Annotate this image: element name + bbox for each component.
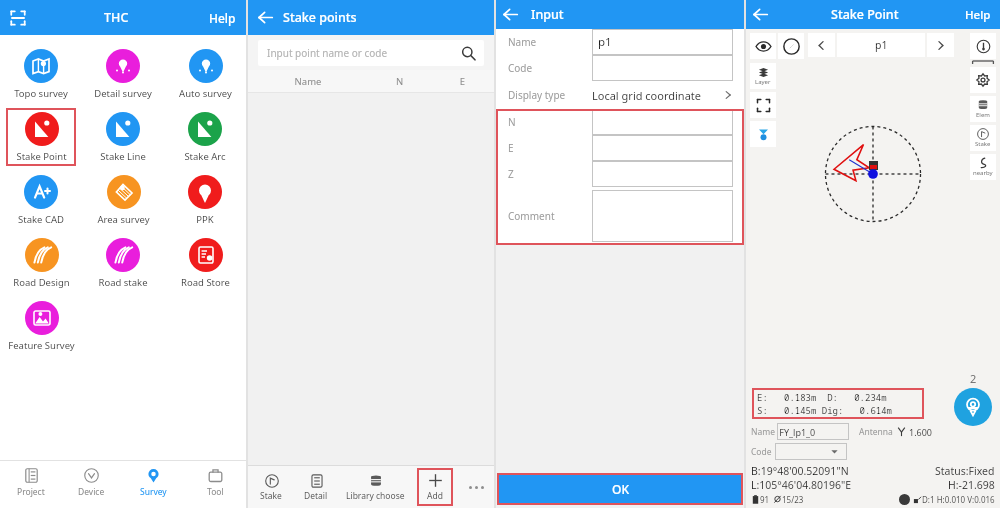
staticText: Road stake	[98, 276, 148, 289]
staticText: Device	[78, 486, 105, 498]
button[interactable]: OK	[499, 475, 741, 503]
staticText: Z	[508, 167, 592, 181]
button[interactable]	[775, 443, 847, 460]
button[interactable]	[592, 190, 733, 242]
button[interactable]: Eye	[750, 33, 776, 59]
button[interactable]: Input point name or code	[258, 40, 484, 66]
button[interactable]: Back	[496, 0, 525, 29]
staticText: Code	[751, 446, 772, 458]
button[interactable]: Project	[0, 461, 61, 503]
staticText: Feature Survey	[8, 339, 75, 352]
staticText: E: 0.183m D: 0.234m	[757, 391, 887, 403]
button[interactable]: Detail	[293, 466, 339, 508]
button[interactable]: Detail survey	[84, 45, 162, 103]
button[interactable]	[592, 135, 733, 161]
button[interactable]: Stake	[248, 466, 293, 508]
button[interactable]: Layer	[750, 63, 776, 89]
button[interactable]: Device	[61, 461, 122, 503]
button[interactable]: FY_lp1_0	[777, 423, 849, 440]
staticText: p1	[598, 34, 612, 50]
button[interactable]: Elem	[970, 96, 996, 122]
button[interactable]: Stake CAD	[2, 171, 80, 229]
staticText: Topo survey	[14, 87, 68, 100]
staticText: Input point name or code	[267, 46, 388, 60]
button[interactable]: Display type	[496, 81, 744, 109]
staticText: Auto survey	[179, 87, 232, 100]
button[interactable]: More	[458, 466, 494, 508]
button[interactable]: Area survey	[84, 171, 162, 229]
staticText: Status:Fixed	[935, 464, 995, 478]
staticText: Road Store	[181, 276, 230, 289]
button[interactable]: Stake Line	[84, 108, 162, 166]
button[interactable]: Road Store	[166, 234, 244, 292]
button[interactable]: Collect point	[954, 388, 992, 426]
staticText: p1	[875, 38, 888, 52]
staticText: E	[508, 141, 592, 155]
staticText: PPK	[196, 213, 214, 226]
button[interactable]: nearby	[970, 154, 996, 180]
staticText: Code	[508, 61, 592, 75]
button[interactable]: Fullscreen	[750, 92, 776, 118]
staticText: FY_lp1_0	[777, 426, 816, 438]
button[interactable]: Stake Arc	[166, 108, 244, 166]
button[interactable]: Settings	[970, 67, 996, 93]
button[interactable]: Help	[199, 10, 246, 26]
button[interactable]: Auto survey	[166, 45, 244, 103]
staticText: Stake	[260, 490, 282, 502]
staticText: Stake CAD	[18, 213, 64, 226]
staticText: 2	[970, 371, 977, 386]
staticText: THC	[104, 9, 129, 26]
button[interactable]: Add	[417, 468, 453, 506]
button[interactable]: Survey	[122, 461, 184, 503]
button[interactable]: Target	[750, 121, 776, 147]
staticText: E	[431, 75, 494, 88]
button[interactable]: Topo survey	[2, 45, 80, 103]
staticText: L:105°46'04.80196"E	[751, 478, 852, 492]
staticText: Stake	[975, 140, 991, 148]
button[interactable]: Stake Point	[6, 108, 76, 166]
button[interactable]: Road stake	[84, 234, 162, 292]
button[interactable]: Zoom	[970, 33, 996, 59]
staticText: nearby	[973, 169, 993, 177]
button[interactable]: Back	[746, 0, 775, 29]
button[interactable]: Tool	[184, 461, 246, 503]
button[interactable]: p1	[837, 33, 925, 57]
staticText: Library choose	[346, 490, 405, 502]
button[interactable]	[592, 109, 733, 135]
button[interactable]: Scan	[0, 0, 35, 35]
staticText: Name	[508, 35, 592, 49]
button[interactable]	[592, 55, 733, 81]
button[interactable]: Help	[956, 7, 1000, 23]
staticText: Survey	[140, 486, 167, 498]
button[interactable]: Stake	[970, 125, 996, 151]
staticText: Area survey	[97, 213, 150, 226]
button[interactable]: Next point	[927, 33, 954, 57]
staticText: Comment	[508, 209, 592, 223]
staticText: Stake points	[283, 9, 357, 26]
button[interactable]: Compass	[778, 33, 804, 59]
staticText: S: 0.145m Dig: 0.614m	[757, 404, 893, 416]
button[interactable]: Road Design	[2, 234, 80, 292]
button[interactable]: Previous point	[808, 33, 835, 57]
button[interactable]: Feature Survey	[2, 297, 80, 355]
staticText: 1.600	[909, 426, 933, 438]
staticText: Display type	[508, 88, 592, 102]
button[interactable]	[592, 161, 733, 187]
button[interactable]: PPK	[166, 171, 244, 229]
staticText: Stake Point	[831, 6, 899, 23]
staticText: Stake Arc	[184, 150, 226, 163]
staticText: Help	[209, 10, 236, 26]
button[interactable]: Library choose	[339, 466, 412, 508]
staticText: Project	[17, 486, 45, 498]
staticText: Tool	[207, 486, 224, 498]
staticText: N	[368, 75, 431, 88]
staticText: Layer	[755, 78, 771, 86]
staticText: Road Design	[13, 276, 70, 289]
staticText: N	[508, 115, 592, 129]
staticText: Detail	[304, 490, 328, 502]
staticText: B:19°48'00.52091"N	[751, 464, 849, 478]
button[interactable]: p1	[592, 29, 733, 55]
staticText: Name	[751, 426, 775, 438]
button[interactable]: Back	[248, 0, 283, 35]
staticText: Stake Point	[16, 150, 67, 163]
